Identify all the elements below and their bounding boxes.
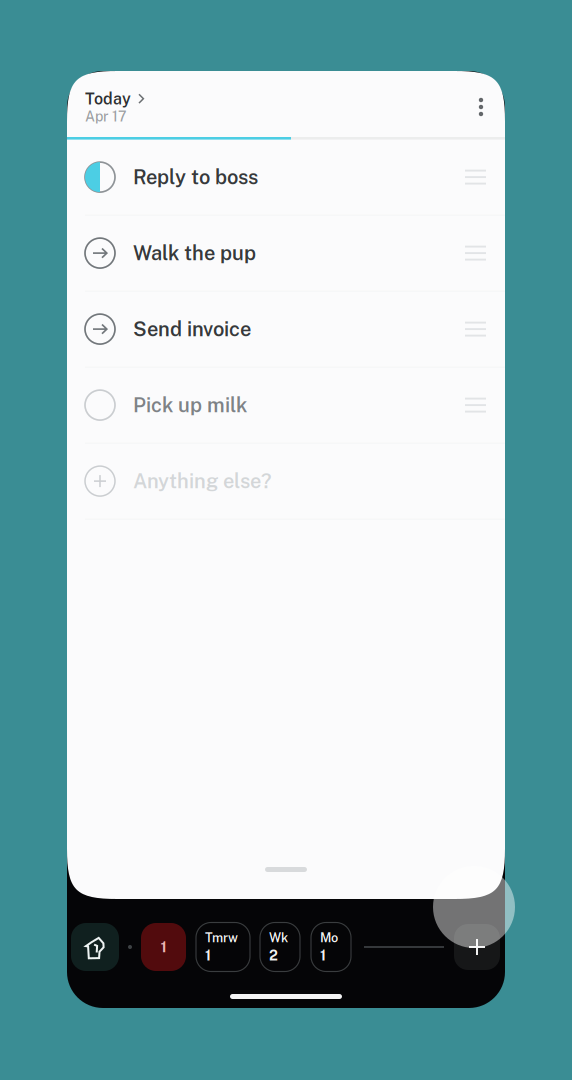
button[interactable]: Add — [454, 924, 500, 970]
staticText: Today — [85, 89, 131, 108]
button[interactable]: More options — [459, 85, 503, 129]
staticText: Apr 17 — [85, 108, 127, 125]
button[interactable]: Pick up milk — [67, 368, 505, 443]
staticText: Walk the pup — [133, 241, 256, 265]
button[interactable]: Anything else? — [67, 444, 505, 519]
staticText: Anything else? — [133, 469, 272, 493]
button[interactable]: Send invoice — [67, 292, 505, 367]
button[interactable]: 1 — [141, 923, 186, 971]
button[interactable]: Today — [85, 89, 145, 108]
button[interactable]: Reply to boss — [67, 140, 505, 215]
staticText: Mo — [320, 930, 338, 945]
staticText: Reply to boss — [133, 165, 258, 189]
staticText: 1 — [160, 938, 166, 956]
staticText: 2 — [269, 947, 278, 964]
button[interactable]: Assistant — [71, 923, 119, 971]
staticText: Send invoice — [133, 317, 251, 341]
button[interactable]: Wk — [260, 922, 300, 971]
button[interactable]: Walk the pup — [67, 216, 505, 291]
staticText: 1 — [320, 947, 326, 964]
staticText: 1 — [205, 947, 211, 964]
button[interactable]: Tmrw — [196, 922, 250, 971]
staticText: Pick up milk — [133, 393, 247, 417]
staticText: Tmrw — [205, 930, 238, 945]
button[interactable]: Mo — [311, 922, 351, 971]
staticText: Wk — [269, 930, 288, 945]
